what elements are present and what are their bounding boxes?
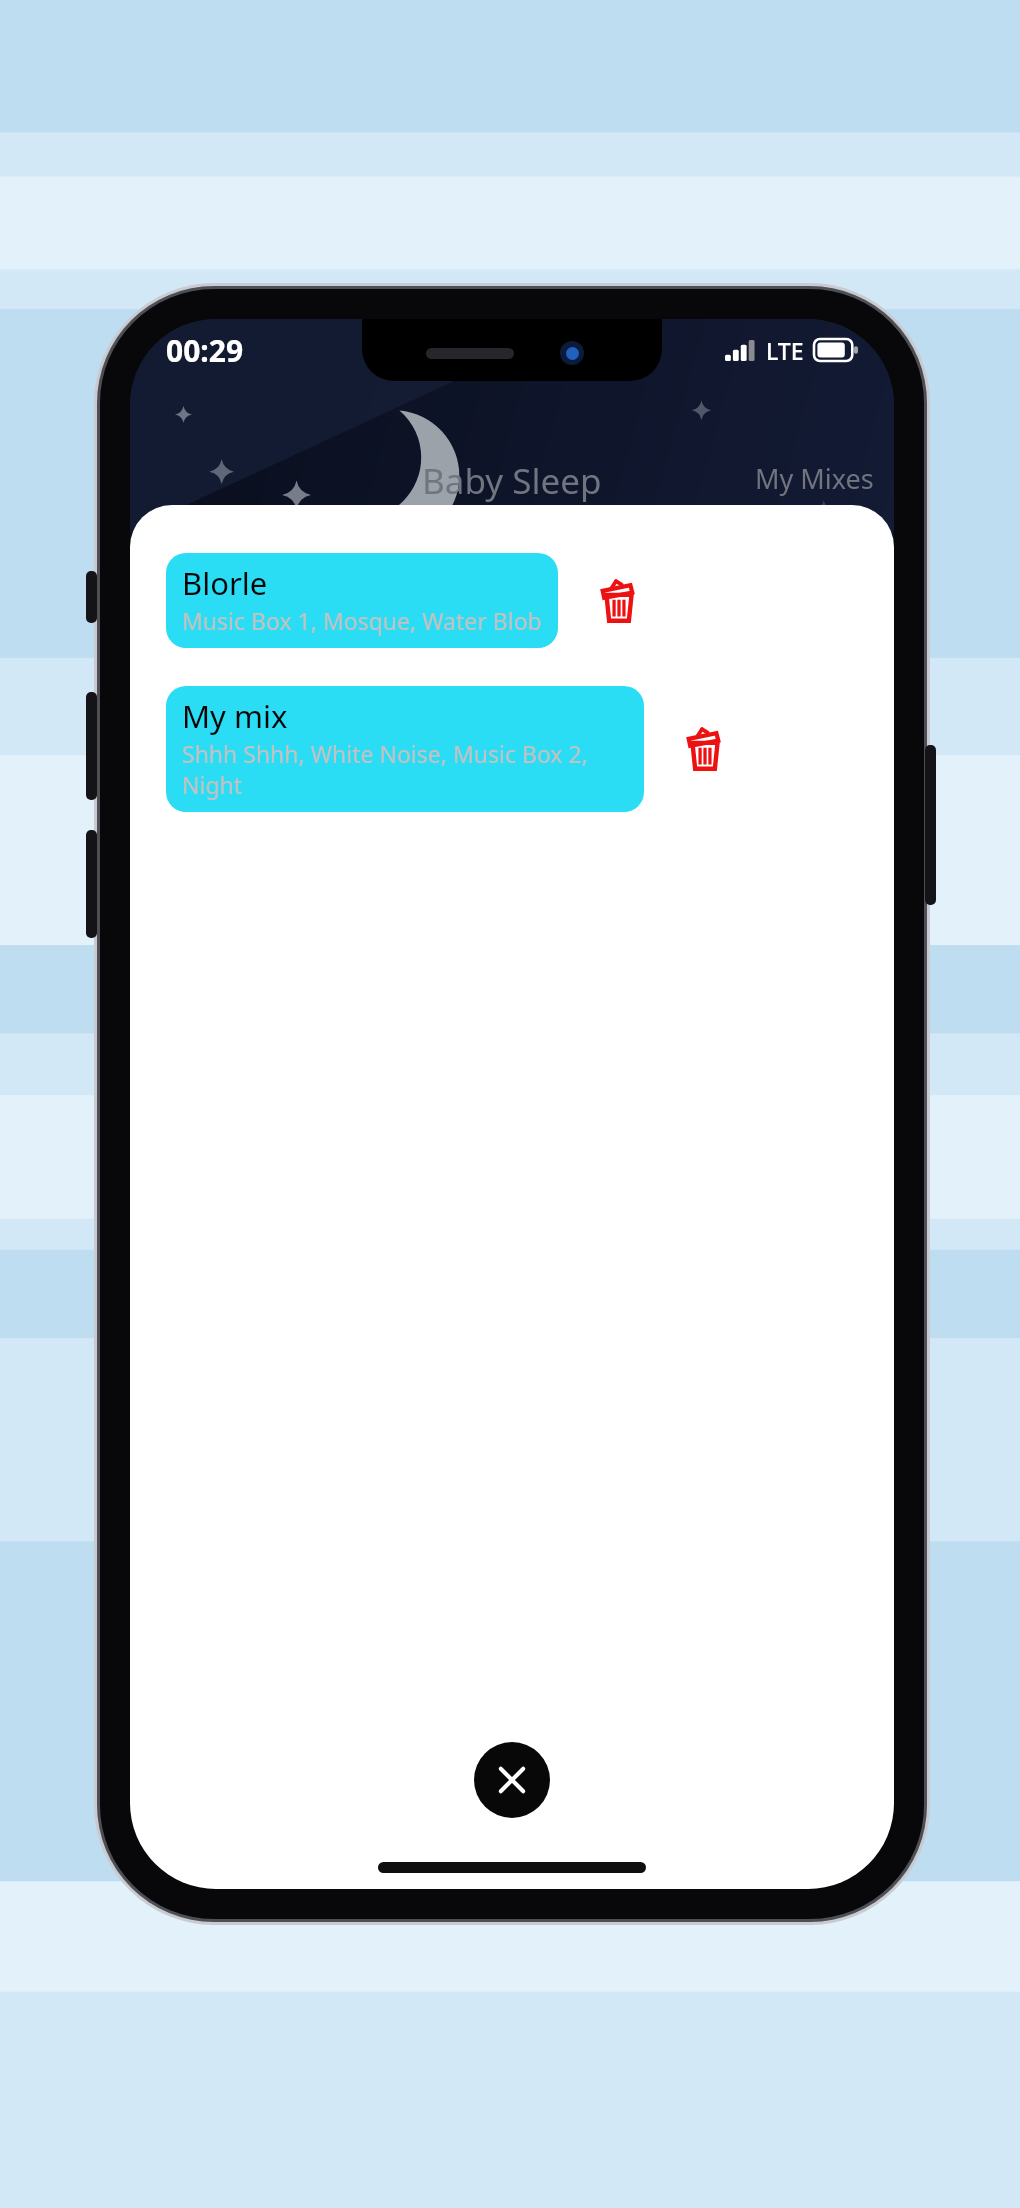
button[interactable]: My mix	[166, 686, 644, 812]
staticText: Music Box 1, Mosque, Water Blob	[182, 605, 542, 636]
staticText: Blorle	[182, 562, 268, 604]
button[interactable]: My Mixes	[735, 454, 894, 503]
staticText: 00:29	[166, 330, 244, 371]
staticText: Shhh Shhh, White Noise, Music Box 2, Nig…	[182, 738, 630, 800]
button[interactable]: Delete mix	[582, 564, 656, 638]
button[interactable]: Close	[474, 1742, 550, 1818]
button[interactable]: Delete mix	[668, 712, 742, 786]
button[interactable]: Blorle	[166, 553, 558, 648]
staticText: LTE	[766, 335, 804, 366]
staticText: My Mixes	[755, 460, 874, 497]
staticText: Baby Sleep	[422, 457, 602, 505]
staticText: My mix	[182, 695, 288, 737]
